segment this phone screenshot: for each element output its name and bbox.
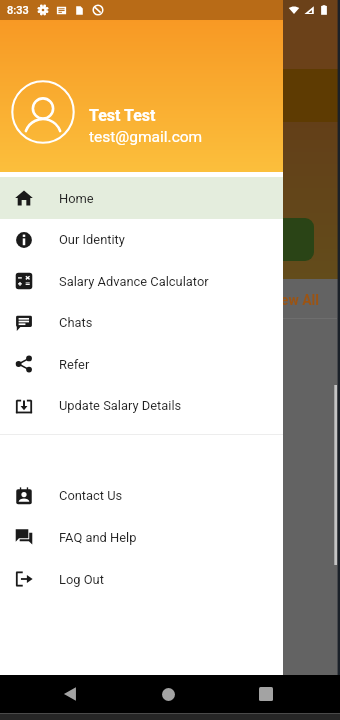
button[interactable]: Back bbox=[40, 675, 100, 713]
staticText: Update Salary Details bbox=[59, 398, 182, 413]
button[interactable]: Update Salary Details bbox=[0, 385, 283, 426]
button[interactable]: Chats bbox=[0, 302, 283, 343]
button[interactable]: Test Test bbox=[0, 0, 283, 172]
staticText: Salary Advance Calculator bbox=[59, 274, 209, 289]
button[interactable]: Contact Us bbox=[0, 475, 283, 516]
button[interactable]: Home bbox=[138, 675, 198, 713]
staticText: View All bbox=[268, 292, 319, 308]
button[interactable]: Log Out bbox=[0, 558, 283, 600]
staticText: Home bbox=[59, 191, 94, 206]
button[interactable]: Salary Advance Calculator bbox=[0, 260, 283, 302]
button[interactable]: Home bbox=[0, 177, 283, 219]
staticText: Chats bbox=[59, 315, 93, 330]
staticText: FAQ and Help bbox=[59, 530, 137, 545]
button[interactable]: Recents bbox=[236, 675, 296, 713]
staticText: Contact Us bbox=[59, 488, 123, 503]
staticText: Log Out bbox=[59, 572, 104, 587]
button[interactable]: View All bbox=[268, 292, 319, 308]
button[interactable]: FAQ and Help bbox=[0, 516, 283, 558]
staticText: Test Test bbox=[89, 106, 156, 125]
staticText: Our Identity bbox=[59, 232, 125, 247]
button[interactable]: Refer bbox=[0, 343, 283, 385]
button[interactable]: Our Identity bbox=[0, 219, 283, 260]
staticText: Refer bbox=[59, 357, 90, 372]
staticText: test@gmail.com bbox=[89, 128, 203, 146]
staticText: 8:33 bbox=[7, 4, 29, 17]
